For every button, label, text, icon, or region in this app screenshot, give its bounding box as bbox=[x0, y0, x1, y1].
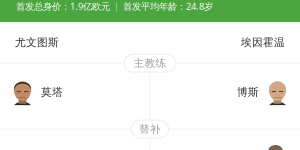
staticText: 首发平均年龄：24.8岁 bbox=[123, 0, 213, 12]
staticText: | bbox=[110, 0, 123, 12]
staticText: 埃因霍温 bbox=[241, 36, 285, 49]
staticText: 主教练 bbox=[133, 57, 166, 70]
staticText: 替补 bbox=[139, 123, 161, 136]
staticText: 莫塔 bbox=[41, 86, 63, 99]
staticText: 尤文图斯 bbox=[15, 36, 59, 49]
staticText: 首发总身价：1.9亿欧元 bbox=[16, 0, 110, 12]
staticText: 博斯 bbox=[237, 86, 259, 99]
